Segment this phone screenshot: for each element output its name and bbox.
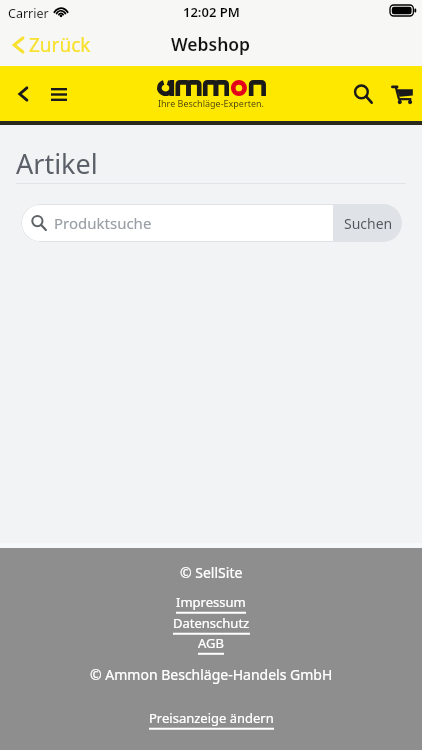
staticText: Artikel xyxy=(16,145,98,182)
button[interactable]: Impressum xyxy=(176,593,246,614)
button[interactable]: Shopping cart xyxy=(385,77,419,111)
button[interactable]: Menu xyxy=(42,77,76,111)
button[interactable]: AGB xyxy=(198,634,224,655)
staticText: Suchen xyxy=(344,214,393,233)
staticText: © Ammon Beschläge-Handels GmbH xyxy=(90,665,333,684)
button[interactable]: Preisanzeige ändern xyxy=(149,709,274,730)
staticText: Datenschutz xyxy=(173,614,250,632)
staticText: Ihre Beschläge-Experten. xyxy=(158,97,264,109)
staticText: Webshop xyxy=(171,32,251,56)
button[interactable]: Suchen xyxy=(334,204,402,242)
button[interactable]: Zurück xyxy=(0,29,101,61)
staticText: Zurück xyxy=(29,32,91,58)
button[interactable]: Produktsuche xyxy=(21,204,334,242)
button[interactable]: Back xyxy=(7,78,39,110)
button[interactable]: Datenschutz xyxy=(173,614,250,635)
staticText: Impressum xyxy=(176,593,246,611)
staticText: AGB xyxy=(198,634,224,652)
staticText: 12:02 PM xyxy=(183,3,240,21)
staticText: Carrier xyxy=(8,5,49,22)
staticText: Produktsuche xyxy=(54,213,152,233)
button[interactable]: Search xyxy=(346,77,380,111)
staticText: © SellSite xyxy=(180,563,243,582)
staticText: Preisanzeige ändern xyxy=(149,709,274,727)
